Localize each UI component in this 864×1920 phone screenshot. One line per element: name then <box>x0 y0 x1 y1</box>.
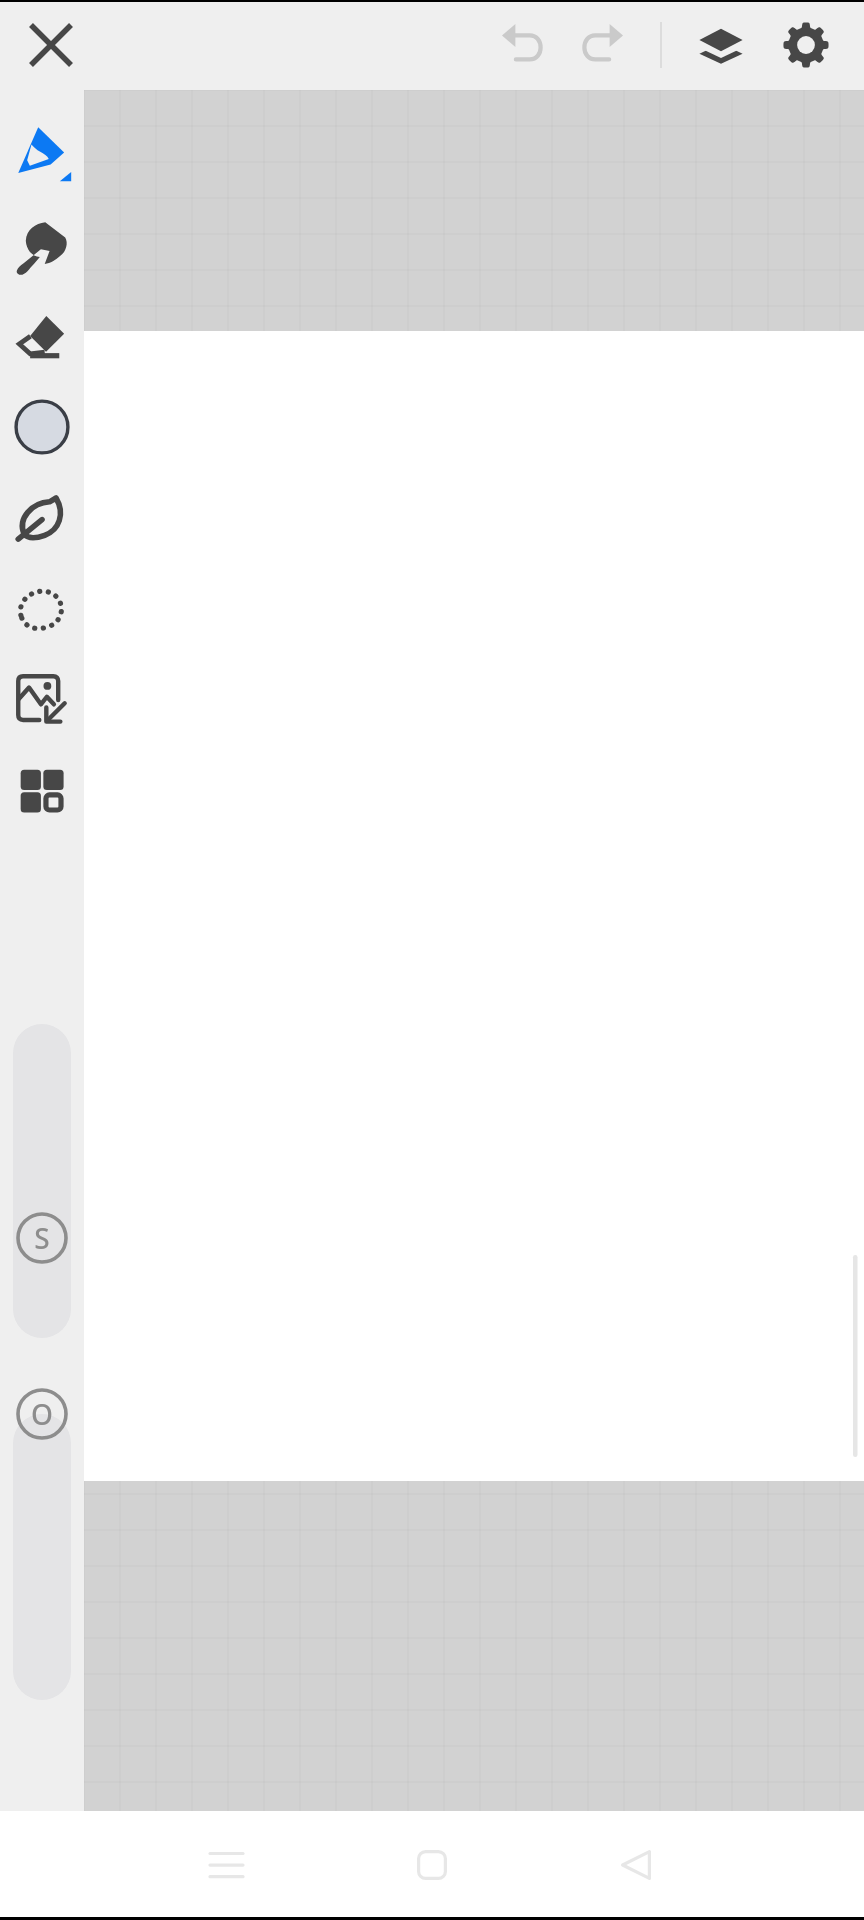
button[interactable]: Eraser <box>0 291 84 381</box>
button[interactable]: Back <box>588 1817 684 1913</box>
button[interactable]: Home <box>384 1817 480 1913</box>
button[interactable]: Color <box>0 382 84 472</box>
button[interactable]: Redo <box>564 9 636 81</box>
button[interactable]: Image <box>0 655 84 745</box>
button[interactable]: Close <box>6 9 96 81</box>
button[interactable]: S <box>13 1024 71 1338</box>
button[interactable]: Layers <box>685 9 757 81</box>
button[interactable]: Lasso <box>0 564 84 654</box>
button[interactable]: Smudge <box>0 200 84 290</box>
button[interactable]: Recents <box>178 1817 274 1913</box>
button[interactable]: Undo <box>489 9 561 81</box>
button[interactable]: O <box>13 1414 71 1700</box>
staticText: O <box>31 1395 53 1433</box>
staticText: S <box>34 1219 50 1257</box>
button[interactable]: Leaf <box>0 473 84 563</box>
button[interactable]: Pen <box>0 107 84 197</box>
button[interactable]: Templates <box>0 746 84 836</box>
button[interactable]: Settings <box>770 9 842 81</box>
